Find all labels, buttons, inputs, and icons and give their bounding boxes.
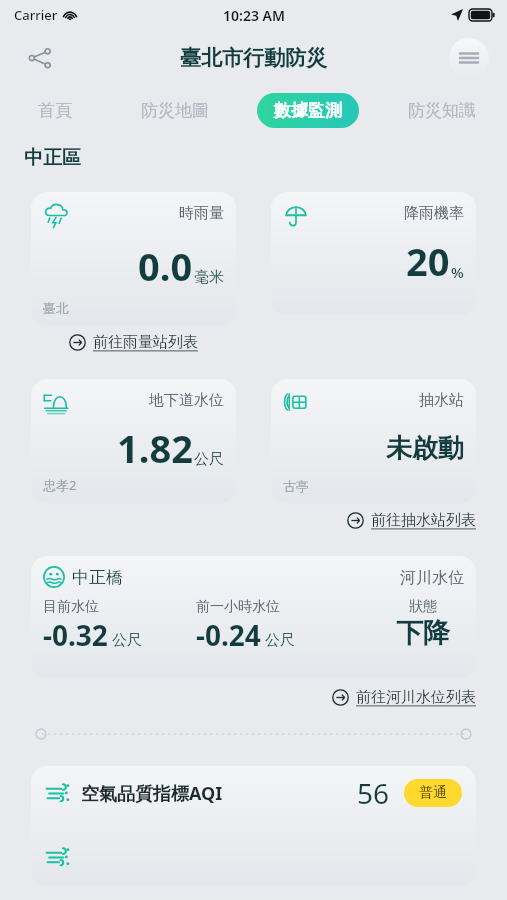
staticText: 狀態 (409, 598, 437, 616)
staticText: 臺北 (43, 300, 69, 316)
staticText: -0.24 (196, 616, 261, 654)
staticText: 公尺 (112, 631, 142, 650)
staticText: 地下道水位 (149, 391, 224, 410)
staticText: 目前水位 (43, 598, 99, 616)
button[interactable]: 數據監測 (240, 86, 376, 134)
button[interactable]: 前往雨量站列表 (69, 331, 198, 354)
staticText: 前往河川水位列表 (356, 688, 476, 707)
staticText: 前往抽水站列表 (371, 511, 476, 530)
staticText: 10:23 AM (223, 6, 285, 25)
staticText: 河川水位 (400, 568, 464, 588)
button[interactable]: 前往抽水站列表 (347, 509, 476, 532)
button[interactable]: 地下道水位 (31, 379, 236, 503)
staticText: 首頁 (38, 100, 72, 121)
staticText: -0.32 (43, 616, 108, 654)
staticText: 前一小時水位 (196, 598, 280, 616)
staticText: 抽水站 (419, 391, 464, 410)
staticText: 前往雨量站列表 (93, 333, 198, 352)
staticText: 下降 (396, 616, 450, 650)
staticText: 數據監測 (274, 100, 342, 121)
button[interactable]: 抽水站 (271, 379, 476, 503)
staticText: 空氣品質指標AQI (81, 781, 357, 806)
staticText: 臺北市行動防災 (180, 45, 327, 71)
button[interactable]: 首頁 (0, 86, 109, 134)
button[interactable]: 空氣品質指標AQI (31, 766, 476, 886)
button[interactable]: 降雨機率 (271, 192, 476, 315)
staticText: Carrier (14, 6, 58, 24)
button[interactable]: 中正橋 (31, 556, 476, 678)
button[interactable]: Share (18, 36, 62, 80)
staticText: 中正橋 (72, 567, 123, 588)
staticText: 未啟動 (386, 432, 464, 465)
staticText: 中正區 (24, 146, 81, 170)
staticText: 1.82 (117, 422, 193, 474)
staticText: 防災地圖 (141, 100, 209, 121)
button[interactable]: 防災地圖 (109, 86, 240, 134)
button[interactable]: Menu (449, 38, 489, 78)
button[interactable]: 前往河川水位列表 (332, 686, 476, 709)
staticText: 普通 (419, 784, 447, 802)
staticText: 0.0 (138, 240, 193, 292)
staticText: 56 (357, 774, 390, 812)
staticText: 公尺 (265, 631, 295, 650)
staticText: 古亭 (283, 478, 309, 494)
staticText: 毫米 (194, 268, 224, 287)
staticText: 公尺 (194, 450, 224, 469)
button[interactable]: 時雨量 (31, 192, 236, 325)
staticText: 防災知識 (408, 100, 476, 121)
staticText: 忠孝2 (43, 476, 77, 494)
staticText: 降雨機率 (404, 204, 464, 223)
staticText: % (451, 262, 464, 282)
staticText: 20 (406, 235, 450, 287)
button[interactable]: 防災知識 (376, 86, 507, 134)
staticText: 時雨量 (179, 204, 224, 223)
